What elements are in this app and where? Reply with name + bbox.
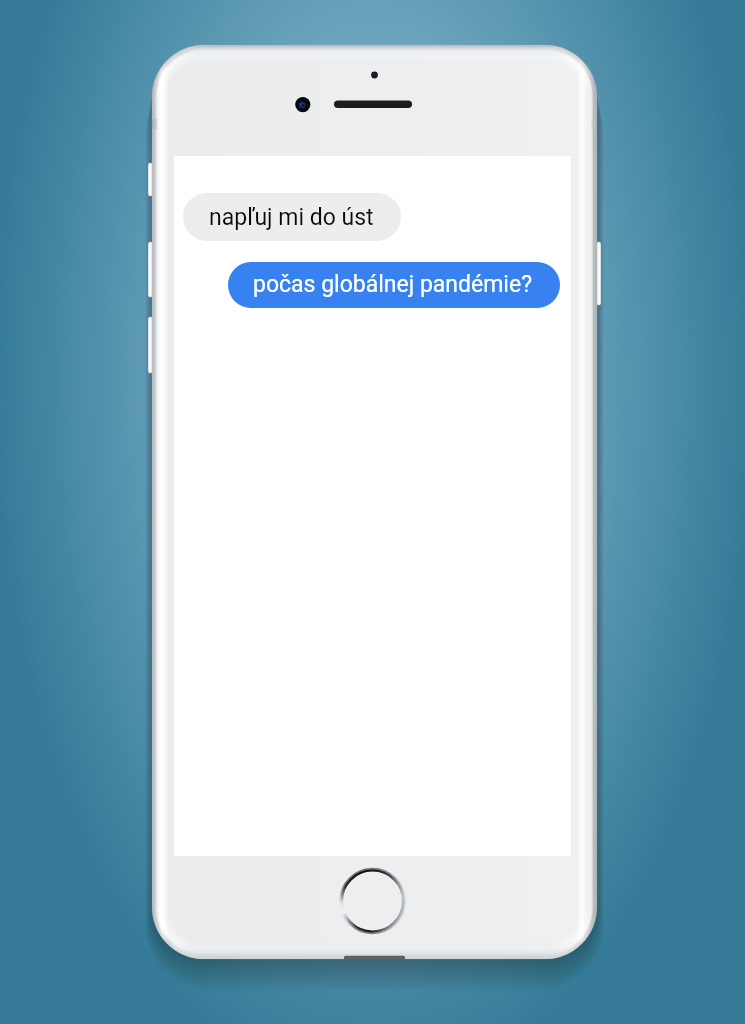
staticText: počas globálnej pandémie? [253, 271, 533, 298]
button[interactable]: počas globálnej pandémie? [228, 262, 560, 308]
button[interactable]: napľuj mi do úst [183, 193, 401, 241]
staticText: napľuj mi do úst [209, 204, 374, 231]
